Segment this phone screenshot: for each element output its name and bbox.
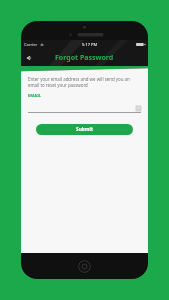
button[interactable]: Back bbox=[23, 52, 35, 64]
staticText: EMAIL bbox=[28, 93, 42, 99]
button[interactable]: Submit bbox=[36, 124, 133, 135]
staticText: Carrier bbox=[24, 42, 38, 47]
button[interactable]: Email input bbox=[28, 104, 141, 113]
staticText: Submit bbox=[76, 126, 93, 133]
staticText: 5:17 PM bbox=[82, 42, 98, 47]
staticText: Enter your email address and we will sen… bbox=[28, 76, 141, 88]
staticText: Forgot Password bbox=[55, 53, 114, 63]
